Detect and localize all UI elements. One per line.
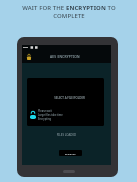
staticText: FILES LOADED bbox=[22, 133, 111, 137]
staticText: Encrypting bbox=[38, 117, 52, 121]
staticText: AES ENCRYPTION bbox=[50, 54, 80, 58]
staticText: SELECT A FILE/FOLDER bbox=[31, 96, 104, 100]
staticText: ENCRYPT bbox=[65, 152, 76, 155]
button[interactable]: SELECT A FILE/FOLDER bbox=[27, 78, 104, 126]
button[interactable]: ENCRYPT bbox=[59, 150, 82, 156]
staticText: Large files take time bbox=[38, 113, 63, 117]
other: Encryption lock bbox=[27, 54, 31, 60]
staticText: Please wait bbox=[38, 109, 52, 113]
staticText: WAIT FOR THE ENCRYPTION TO COMPLETE bbox=[19, 4, 119, 20]
